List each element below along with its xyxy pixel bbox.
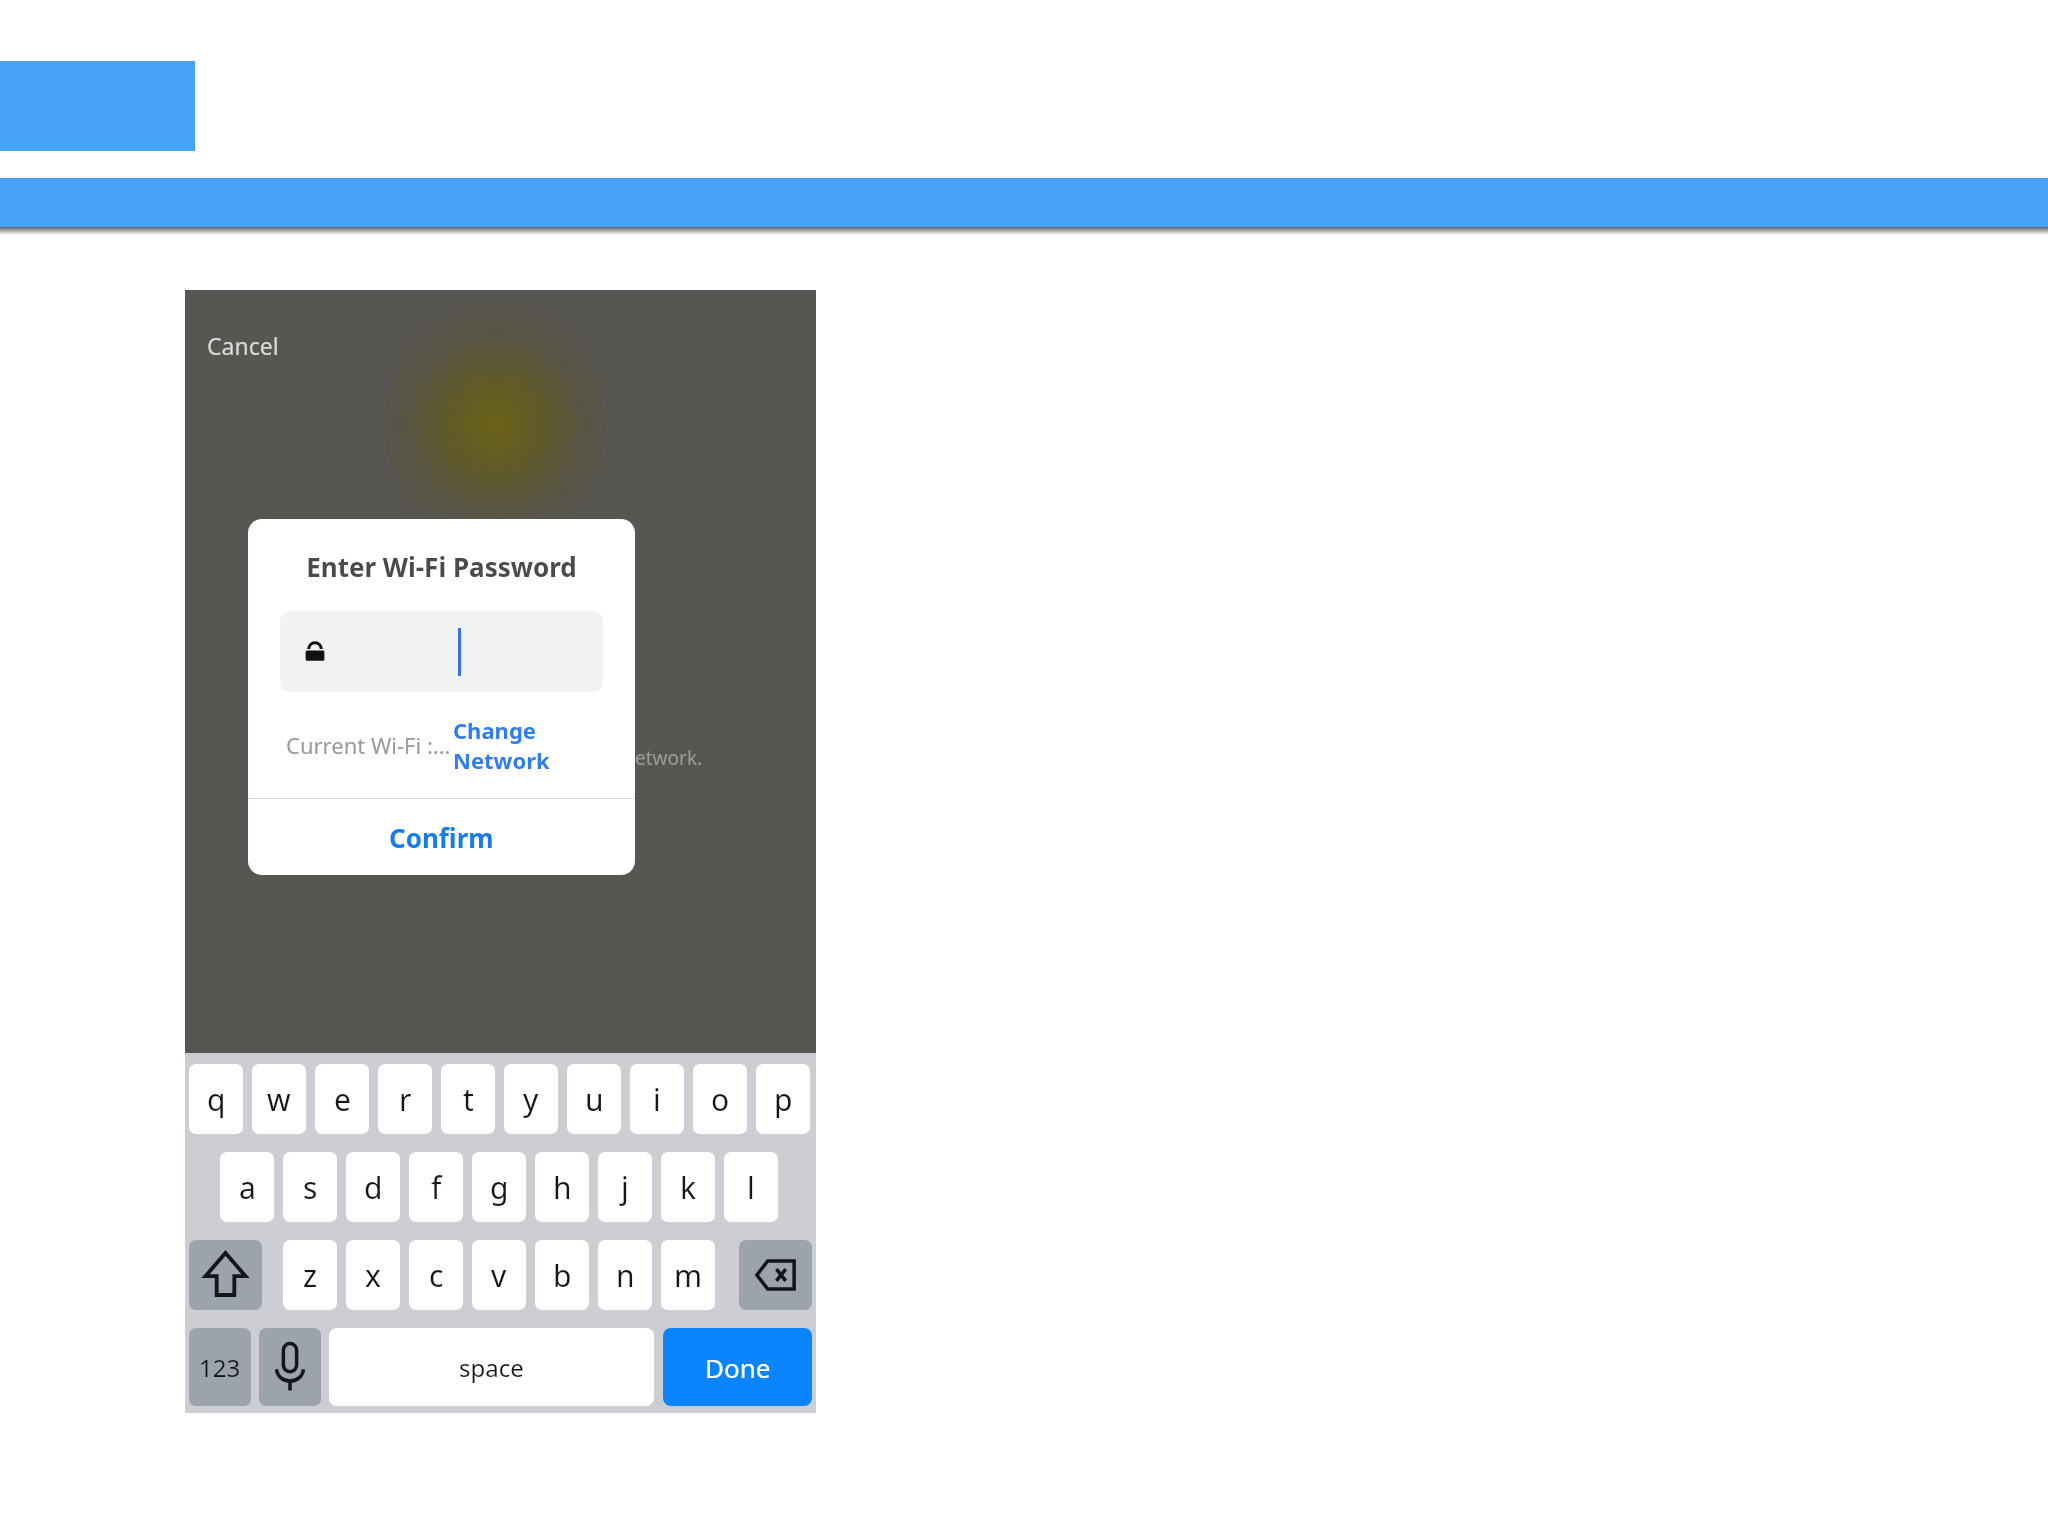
button[interactable]: Change Network bbox=[451, 713, 605, 777]
staticText: c bbox=[429, 1255, 444, 1296]
button[interactable]: k bbox=[661, 1152, 715, 1222]
staticText: w bbox=[267, 1079, 291, 1120]
staticText: q bbox=[207, 1079, 226, 1120]
button[interactable]: h bbox=[535, 1152, 589, 1222]
staticText: y bbox=[523, 1079, 539, 1120]
staticText: s bbox=[303, 1167, 318, 1208]
button[interactable]: s bbox=[283, 1152, 337, 1222]
button[interactable]: z bbox=[283, 1240, 337, 1310]
button[interactable]: w bbox=[252, 1064, 306, 1134]
staticText: Done bbox=[705, 1350, 771, 1385]
button[interactable]: space bbox=[329, 1328, 654, 1406]
button[interactable]: b bbox=[535, 1240, 589, 1310]
staticText: t bbox=[463, 1079, 474, 1120]
button[interactable]: n bbox=[598, 1240, 652, 1310]
staticText: z bbox=[303, 1255, 318, 1296]
button[interactable]: Done bbox=[663, 1328, 812, 1406]
staticText: e bbox=[334, 1079, 351, 1120]
button[interactable]: m bbox=[661, 1240, 715, 1310]
staticText: Cancel bbox=[207, 330, 279, 361]
staticText: 123 bbox=[199, 1351, 241, 1384]
staticText: h bbox=[553, 1167, 572, 1208]
staticText: g bbox=[490, 1167, 509, 1208]
button[interactable]: 123 bbox=[189, 1328, 251, 1406]
staticText: n bbox=[616, 1255, 635, 1296]
staticText: p bbox=[774, 1079, 793, 1120]
staticText: u bbox=[585, 1079, 604, 1120]
button[interactable]: Backspace bbox=[739, 1240, 812, 1310]
staticText: l bbox=[747, 1167, 755, 1208]
button[interactable]: y bbox=[504, 1064, 558, 1134]
staticText: x bbox=[365, 1255, 381, 1296]
button[interactable]: Confirm bbox=[248, 799, 635, 875]
button[interactable]: u bbox=[567, 1064, 621, 1134]
button[interactable]: x bbox=[346, 1240, 400, 1310]
button[interactable]: p bbox=[756, 1064, 810, 1134]
staticText: space bbox=[459, 1351, 524, 1384]
button[interactable]: c bbox=[409, 1240, 463, 1310]
staticText: b bbox=[553, 1255, 572, 1296]
staticText: This app supports only 2.4GHz Wi-Fi netw… bbox=[185, 745, 816, 771]
staticText: j bbox=[621, 1167, 629, 1208]
staticText: f bbox=[431, 1167, 442, 1208]
staticText: Current Wi-Fi :... bbox=[286, 730, 451, 760]
button[interactable]: r bbox=[378, 1064, 432, 1134]
staticText: Change Network bbox=[453, 715, 603, 775]
button[interactable]: g bbox=[472, 1152, 526, 1222]
button[interactable]: o bbox=[693, 1064, 747, 1134]
button[interactable]: e bbox=[315, 1064, 369, 1134]
staticText: Enter Wi-Fi Password bbox=[248, 549, 635, 584]
button[interactable]: v bbox=[472, 1240, 526, 1310]
button[interactable]: j bbox=[598, 1152, 652, 1222]
staticText: r bbox=[399, 1079, 412, 1120]
button[interactable]: l bbox=[724, 1152, 778, 1222]
staticText: Confirm bbox=[389, 820, 494, 855]
button[interactable]: i bbox=[630, 1064, 684, 1134]
staticText: a bbox=[239, 1167, 256, 1208]
staticText: o bbox=[711, 1079, 730, 1120]
button[interactable]: d bbox=[346, 1152, 400, 1222]
button[interactable]: a bbox=[220, 1152, 274, 1222]
button[interactable]: Shift bbox=[189, 1240, 262, 1310]
staticText: v bbox=[491, 1255, 507, 1296]
button[interactable]: Voice input bbox=[259, 1328, 321, 1406]
button[interactable]: t bbox=[441, 1064, 495, 1134]
staticText: i bbox=[653, 1079, 661, 1120]
button[interactable]: q bbox=[189, 1064, 243, 1134]
button[interactable] bbox=[280, 611, 603, 692]
staticText: d bbox=[364, 1167, 383, 1208]
staticText: m bbox=[674, 1255, 703, 1296]
button[interactable]: Cancel bbox=[203, 328, 283, 363]
staticText: k bbox=[680, 1167, 697, 1208]
button[interactable]: f bbox=[409, 1152, 463, 1222]
